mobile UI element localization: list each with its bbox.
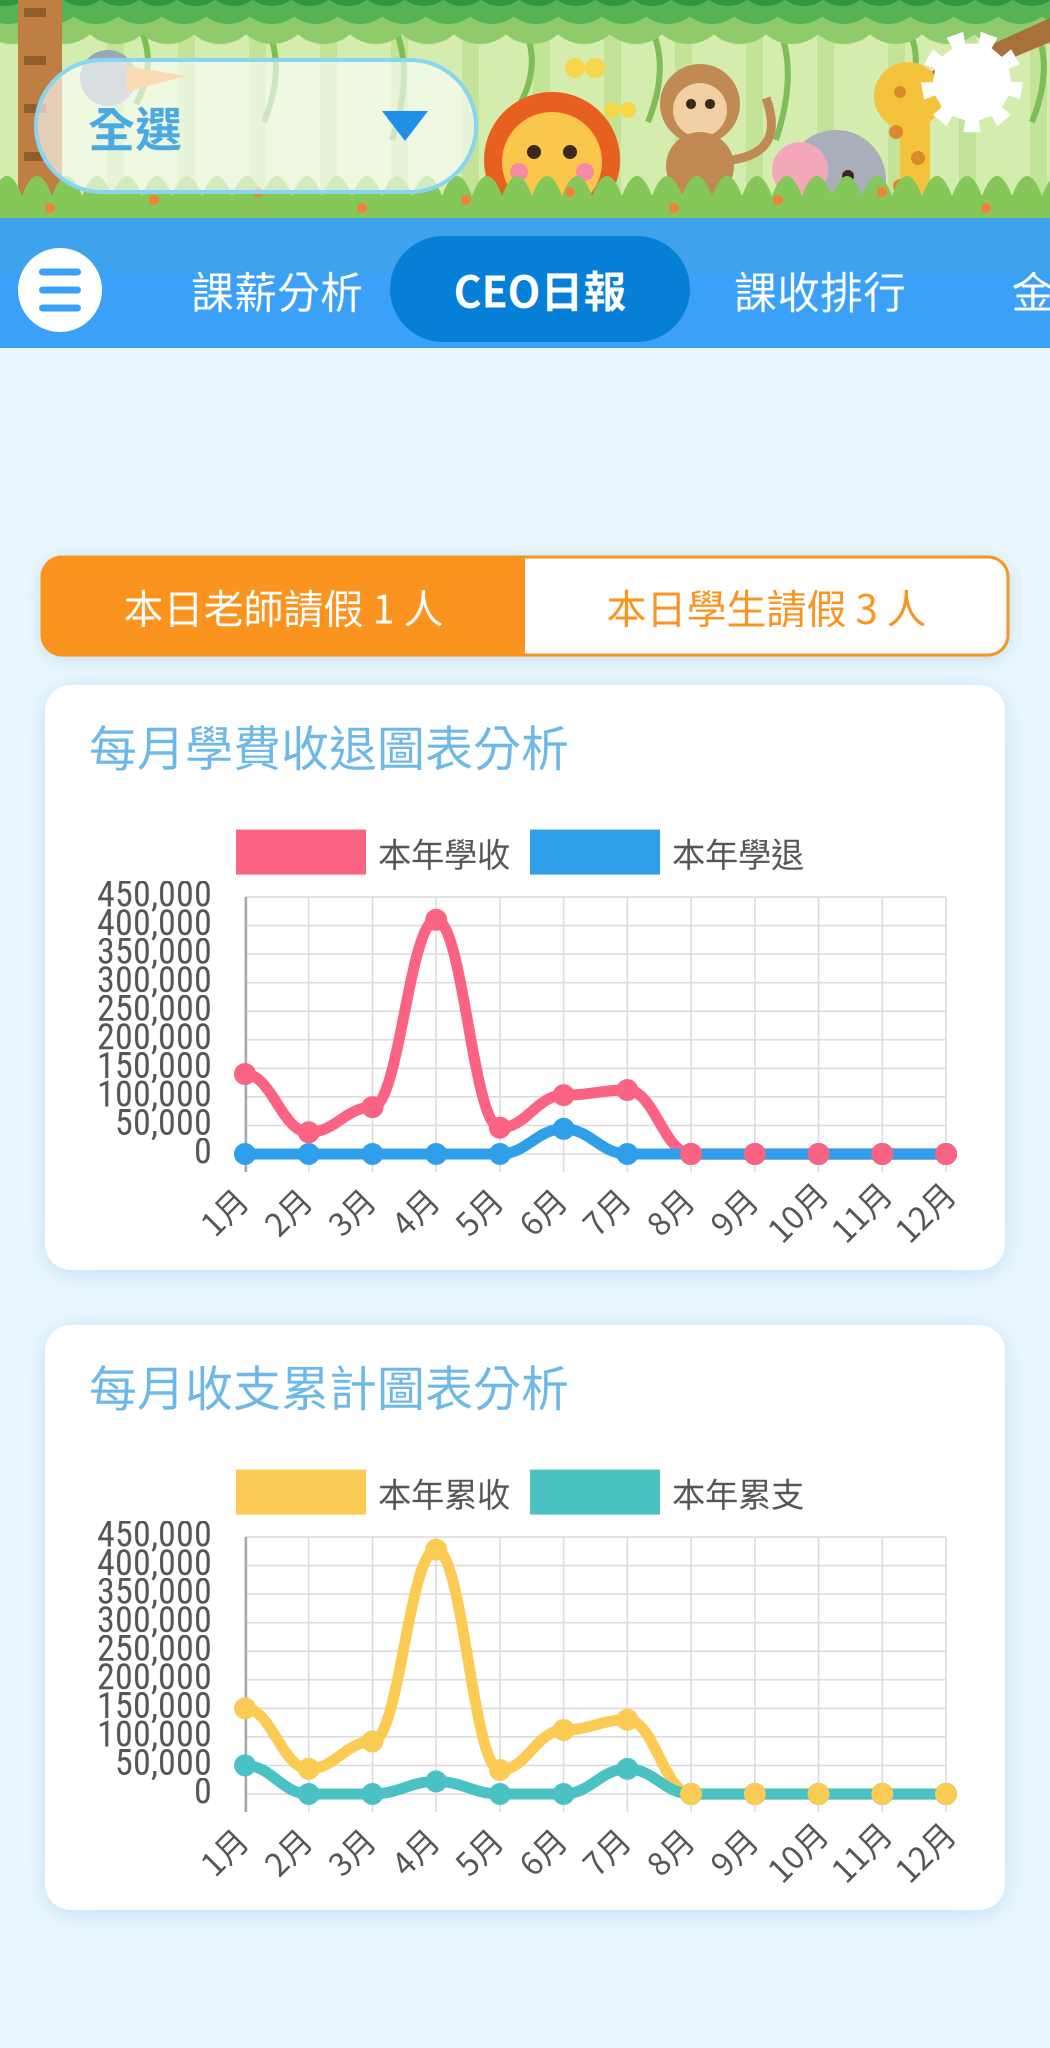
staticText: 4月: [389, 1828, 439, 1874]
staticText: 300,000: [97, 959, 212, 1001]
staticText: 200,000: [97, 1016, 212, 1058]
staticText: 本日學生請假 3 人: [606, 577, 926, 635]
staticText: 300,000: [97, 1599, 212, 1641]
staticText: 12月: [890, 1828, 958, 1874]
staticText: 2月: [262, 1188, 312, 1234]
staticText: 350,000: [97, 1570, 212, 1612]
staticText: 5月: [453, 1828, 503, 1874]
staticText: 本年累支: [672, 1468, 804, 1516]
button[interactable]: CEO日報: [390, 236, 690, 342]
staticText: 200,000: [97, 1656, 212, 1698]
staticText: 6月: [517, 1828, 567, 1874]
staticText: 5月: [453, 1188, 503, 1234]
staticText: 0: [194, 1770, 212, 1812]
staticText: 3月: [325, 1188, 375, 1234]
staticText: 本年學退: [672, 828, 804, 876]
staticText: 本年學收: [378, 828, 510, 876]
staticText: 350,000: [97, 930, 212, 972]
staticText: 100,000: [97, 1073, 212, 1115]
button[interactable]: Settings: [920, 30, 1024, 134]
staticText: 10月: [762, 1188, 830, 1234]
staticText: 450,000: [97, 873, 212, 915]
staticText: 7月: [580, 1188, 630, 1234]
staticText: 400,000: [97, 1542, 212, 1584]
button[interactable]: 金: [1008, 247, 1050, 333]
staticText: 100,000: [97, 1713, 212, 1755]
staticText: 9月: [708, 1188, 758, 1234]
button[interactable]: 課收排行: [720, 247, 920, 333]
staticText: 1月: [198, 1828, 248, 1874]
staticText: 150,000: [97, 1044, 212, 1087]
staticText: 本日老師請假 1 人: [123, 577, 443, 635]
staticText: 10月: [762, 1828, 830, 1874]
staticText: 9月: [708, 1828, 758, 1874]
staticText: 0: [194, 1130, 212, 1172]
staticText: 3月: [325, 1828, 375, 1874]
staticText: 7月: [580, 1828, 630, 1874]
staticText: 每月收支累計圖表分析: [89, 1350, 569, 1419]
staticText: 全選: [88, 92, 182, 160]
staticText: 150,000: [97, 1684, 212, 1727]
staticText: 50,000: [115, 1742, 212, 1784]
staticText: 1月: [198, 1188, 248, 1234]
button[interactable]: 本日老師請假 1 人: [42, 557, 525, 655]
staticText: 本年累收: [378, 1468, 510, 1516]
staticText: CEO日報: [453, 258, 626, 320]
staticText: 每月學費收退圖表分析: [89, 710, 569, 779]
staticText: 金: [1011, 259, 1050, 321]
staticText: 12月: [890, 1188, 958, 1234]
button[interactable]: Menu: [18, 248, 102, 332]
staticText: 4月: [389, 1188, 439, 1234]
staticText: 250,000: [97, 987, 212, 1030]
staticText: 課收排行: [734, 259, 906, 321]
staticText: 250,000: [97, 1627, 212, 1670]
staticText: 450,000: [97, 1513, 212, 1555]
staticText: 11月: [826, 1188, 894, 1234]
staticText: 400,000: [97, 902, 212, 944]
staticText: 8月: [644, 1188, 694, 1234]
staticText: 8月: [644, 1828, 694, 1874]
button[interactable]: 課薪分析: [177, 247, 377, 333]
button[interactable]: 全選: [36, 60, 476, 192]
staticText: 2月: [262, 1828, 312, 1874]
staticText: 課薪分析: [191, 259, 363, 321]
staticText: 50,000: [115, 1102, 212, 1144]
staticText: 6月: [517, 1188, 567, 1234]
button[interactable]: 本日學生請假 3 人: [525, 557, 1008, 655]
staticText: 11月: [826, 1828, 894, 1874]
